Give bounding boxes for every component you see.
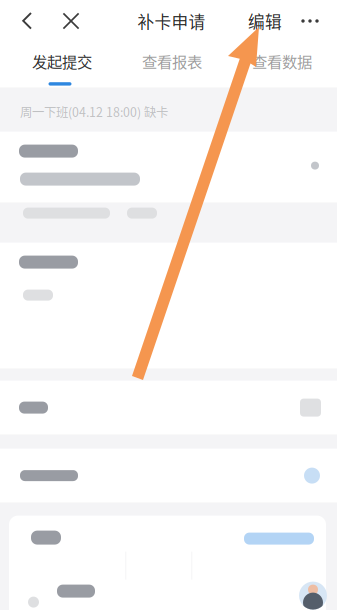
button[interactable]: Close — [45, 0, 97, 42]
button[interactable]: 查看数据 — [227, 42, 337, 88]
staticText: 编辑 — [248, 9, 282, 33]
button[interactable]: Back — [9, 0, 45, 42]
button[interactable]: More — [298, 0, 322, 42]
staticText: 发起提交 — [32, 50, 92, 72]
staticText: 补卡申请 — [137, 9, 205, 33]
staticText: 查看数据 — [252, 50, 312, 72]
button[interactable]: 查看报表 — [117, 42, 227, 88]
button[interactable]: 编辑 — [243, 0, 287, 42]
button[interactable]: 发起提交 — [7, 42, 117, 88]
staticText: 查看报表 — [142, 50, 202, 72]
staticText: 周一下班(04.12 18:00) 缺卡 — [20, 103, 168, 121]
